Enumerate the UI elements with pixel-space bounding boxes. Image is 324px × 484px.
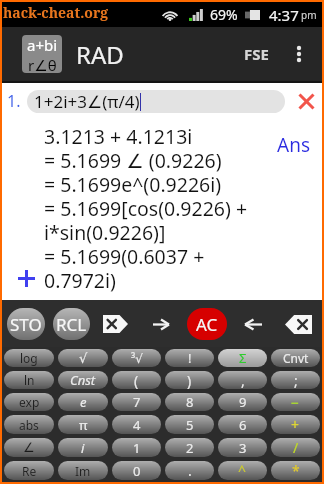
button[interactable]: Im (58, 461, 108, 480)
button[interactable]: Add new entry (16, 268, 36, 288)
button[interactable]: abs (4, 415, 54, 434)
staticText: Σ (239, 349, 247, 367)
button[interactable]: − (271, 393, 320, 411)
staticText: + (291, 415, 300, 434)
button[interactable]: ( (112, 371, 161, 389)
button[interactable]: 5 (165, 415, 214, 434)
staticText: r∠θ (28, 55, 57, 73)
button[interactable]: ∠ (4, 438, 54, 457)
staticText: 9 (239, 393, 247, 411)
staticText: ^ (238, 461, 247, 480)
button[interactable]: STO (7, 308, 45, 340)
staticText: exp (19, 394, 40, 410)
staticText: 3.1213 + 4.1213i = 5.1699 ∠ (0.9226) = 5… (44, 123, 248, 294)
button[interactable]: Re (4, 461, 54, 480)
button[interactable]: Σ (218, 349, 267, 367)
button[interactable]: More options (286, 41, 312, 67)
staticText: Cnvt (283, 350, 309, 366)
button[interactable]: AC (187, 308, 227, 340)
staticText: 3 (239, 439, 247, 457)
button[interactable]: 4 (112, 415, 161, 434)
staticText: ³√ (131, 350, 143, 366)
button[interactable]: 8 (165, 393, 214, 411)
button[interactable]: ; (271, 371, 320, 389)
button[interactable]: 0 (112, 461, 161, 480)
staticText: π (79, 416, 88, 434)
staticText: 6 (239, 416, 247, 434)
button[interactable]: 1+2i+3∠(π/4) (27, 90, 285, 113)
button[interactable]: Move cursor left (245, 311, 262, 337)
button[interactable]: Number format a+bi or r angle theta (22, 35, 62, 73)
staticText: . (188, 461, 192, 480)
staticText: pm (301, 8, 317, 22)
button[interactable]: √ (58, 349, 108, 367)
staticText: hack-cheat.org (3, 3, 109, 22)
button[interactable]: Move cursor right (153, 311, 169, 337)
staticText: ) (187, 371, 192, 389)
staticText: Cnst (70, 371, 96, 389)
staticText: , (241, 371, 245, 389)
staticText: 5 (186, 416, 194, 434)
button[interactable]: Clear entry (293, 88, 319, 114)
button[interactable]: 7 (112, 393, 161, 411)
button[interactable]: Backspace (285, 310, 312, 338)
button[interactable]: ) (165, 371, 214, 389)
button[interactable]: 1 (112, 438, 161, 457)
button[interactable]: 6 (218, 415, 267, 434)
staticText: * (292, 461, 300, 480)
staticText: e (80, 393, 87, 411)
staticText: 4 (133, 416, 141, 434)
button[interactable]: ³√ (112, 349, 161, 367)
button[interactable]: π (58, 415, 108, 434)
button[interactable]: i (58, 438, 108, 457)
staticText: 4:37 (269, 5, 299, 25)
button[interactable]: FSE (239, 36, 274, 72)
staticText: RAD (76, 38, 124, 71)
staticText: ( (134, 371, 139, 389)
button[interactable]: ! (165, 349, 214, 367)
staticText: ∠ (23, 440, 35, 455)
staticText: 1. (7, 90, 21, 112)
button[interactable]: , (218, 371, 267, 389)
staticText: Im (75, 463, 91, 479)
staticText: STO (10, 313, 42, 336)
staticText: ! (188, 349, 192, 367)
staticText: AC (196, 313, 218, 336)
staticText: − (291, 393, 300, 411)
button[interactable]: * (271, 461, 320, 480)
button[interactable]: Cnst (58, 371, 108, 389)
button[interactable]: ln (4, 371, 54, 389)
staticText: Re (22, 463, 37, 479)
staticText: abs (19, 417, 39, 433)
staticText: 7 (133, 393, 141, 411)
staticText: 69% (210, 5, 238, 24)
staticText: ln (24, 372, 35, 388)
button[interactable]: 2 (165, 438, 214, 457)
staticText: ; (294, 371, 298, 389)
button[interactable]: 9 (218, 393, 267, 411)
staticText: Ans (277, 132, 310, 158)
staticText: 8 (186, 393, 194, 411)
button[interactable]: e (58, 393, 108, 411)
staticText: i (81, 439, 85, 457)
staticText: RCL (56, 313, 87, 336)
button[interactable]: / (271, 438, 320, 457)
staticText: 1+2i+3∠(π/4) (34, 90, 140, 113)
button[interactable]: exp (4, 393, 54, 411)
staticText: √ (79, 351, 88, 366)
staticText: log (20, 350, 38, 366)
staticText: / (293, 438, 299, 457)
button[interactable]: log (4, 349, 54, 367)
button[interactable]: ^ (218, 461, 267, 480)
staticText: a+bi (27, 35, 58, 55)
staticText: 2 (186, 439, 194, 457)
button[interactable]: Cnvt (271, 349, 320, 367)
button[interactable]: RCL (53, 308, 90, 340)
button[interactable]: . (165, 461, 214, 480)
staticText: 0 (133, 462, 141, 480)
staticText: 1 (133, 439, 141, 457)
button[interactable]: + (271, 415, 320, 434)
button[interactable]: Delete forward (102, 310, 128, 338)
staticText: FSE (244, 44, 269, 64)
button[interactable]: 3 (218, 438, 267, 457)
